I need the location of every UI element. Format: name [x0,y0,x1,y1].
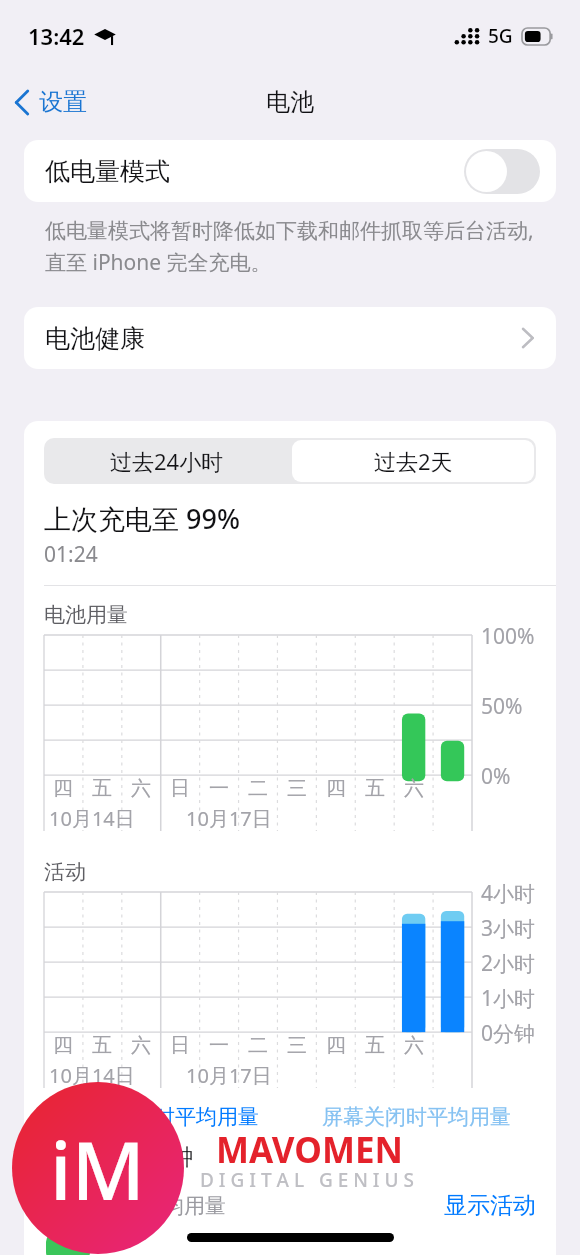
staticText: 三 [287,776,307,801]
staticText: MAVOMEN [216,1126,403,1174]
staticText: 五 [92,1033,112,1058]
staticText: 屏幕关闭时平均用量 [322,1104,511,1130]
staticText: 屏幕开启时平均用量 [70,1104,259,1130]
staticText: 三 [287,1033,307,1058]
staticText: 10月14日 [49,805,135,831]
button[interactable]: 低电量模式开关 [464,149,540,194]
staticText: 0% [481,762,511,791]
staticText: 日 [170,776,190,801]
staticText: 01:24 [44,540,98,569]
staticText: 五 [92,776,112,801]
staticText: 100% [481,622,535,651]
button[interactable]: 过去24小时 [44,438,290,484]
staticText: 二 [248,1033,268,1058]
staticText: 3分钟 [134,1140,194,1171]
staticText: 低电量模式将暂时降低如下载和邮件抓取等后台活动, 直至 iPhone 完全充电。 [45,216,534,277]
staticText: 六 [131,776,151,801]
staticText: 13:42 [28,21,85,51]
staticText: 10月17日 [186,805,272,831]
button[interactable]: 屏幕开启时平均用量 [38,1104,290,1130]
staticText: 二 [248,776,268,801]
button[interactable]: 设置 [0,79,99,125]
staticText: 一 [209,776,229,801]
staticText: 电池用量 [44,602,128,628]
staticText: 四 [53,1033,73,1058]
staticText: 3小时 [481,914,536,943]
staticText: iM [50,1114,146,1223]
staticText: 活动 [44,859,86,885]
staticText: 四 [326,1033,346,1058]
staticText: 过去 10 天平均用量 [44,1191,226,1220]
button[interactable]: 低电量模式 [24,140,556,202]
button[interactable]: 屏幕关闭时平均用量 [290,1104,542,1130]
staticText: 五 [365,776,385,801]
staticText: 六 [131,1033,151,1058]
staticText: 五 [365,1033,385,1058]
staticText: 设置 [39,87,87,117]
staticText: 0分钟 [481,1019,536,1048]
staticText: 5G [488,23,513,49]
staticText: 显示活动 [444,1191,536,1220]
button[interactable]: 过去2天 [292,440,534,482]
staticText: 2小时 [481,949,536,978]
staticText: 4小时 [481,879,536,908]
button[interactable]: 电池健康 [24,307,556,369]
staticText: 低电量模式 [45,156,170,187]
staticText: 一 [209,1033,229,1058]
staticText: 上次充电至 99% [44,500,240,537]
staticText: 六 [404,776,424,801]
staticText: 电池健康 [45,323,145,354]
staticText: 电池 [266,87,314,117]
staticText: 六 [404,1033,424,1058]
staticText: 四 [326,776,346,801]
button[interactable]: 显示活动 [444,1191,536,1220]
staticText: 过去24小时 [110,446,224,476]
staticText: 日 [170,1033,190,1058]
staticText: 10月17日 [186,1062,272,1088]
staticText: 1小时 [481,984,536,1013]
staticText: 50% [481,692,523,721]
staticText: 四 [53,776,73,801]
staticText: 10月14日 [49,1062,135,1088]
staticText: D I G I T A L G E N I U S [200,1167,414,1193]
staticText: 过去2天 [374,446,453,476]
